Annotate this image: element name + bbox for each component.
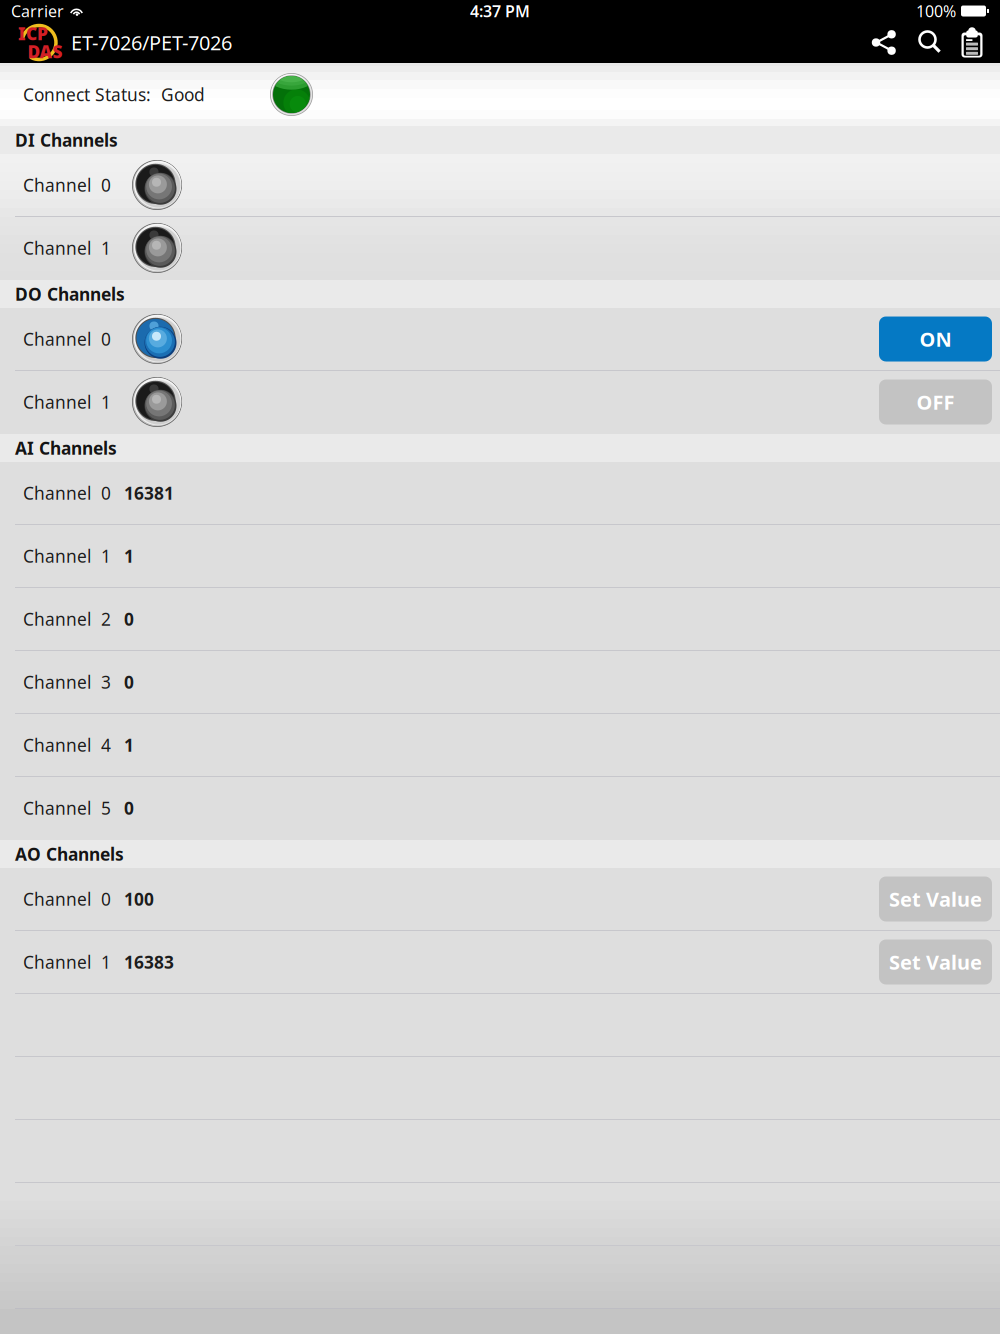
staticText: ET-7026/PET-7026 bbox=[71, 29, 232, 56]
staticText: ON bbox=[919, 326, 951, 352]
staticText: Channel 5 bbox=[23, 796, 111, 819]
staticText: Channel 0 bbox=[23, 327, 111, 350]
button[interactable]: Search bbox=[915, 27, 945, 57]
staticText: Channel 1 bbox=[23, 390, 111, 413]
staticText: Set Value bbox=[889, 886, 982, 912]
button[interactable]: Set Value bbox=[879, 939, 992, 984]
button[interactable]: Share bbox=[869, 27, 899, 57]
staticText: 16381 bbox=[124, 481, 174, 504]
staticText: DI Channels bbox=[15, 128, 118, 151]
staticText: Channel 3 bbox=[23, 670, 111, 693]
staticText: AI Channels bbox=[15, 436, 117, 459]
staticText: 0 bbox=[124, 607, 134, 630]
staticText: Channel 0 bbox=[23, 887, 111, 910]
staticText: Channel 1 bbox=[23, 950, 111, 973]
staticText: 100 bbox=[124, 887, 154, 910]
staticText: 0 bbox=[124, 796, 134, 819]
staticText: 1 bbox=[124, 733, 134, 756]
button[interactable]: ON bbox=[879, 316, 992, 361]
staticText: Channel 0 bbox=[23, 481, 111, 504]
staticText: 1 bbox=[124, 544, 134, 567]
staticText: Channel 0 bbox=[23, 173, 111, 196]
staticText: Channel 2 bbox=[23, 607, 111, 630]
staticText: AO Channels bbox=[15, 842, 124, 865]
staticText: DAS bbox=[27, 40, 62, 63]
button[interactable]: OFF bbox=[879, 379, 992, 424]
staticText: ICP bbox=[18, 22, 48, 45]
staticText: 0 bbox=[124, 670, 134, 693]
staticText: Set Value bbox=[889, 949, 982, 975]
staticText: 4:37 PM bbox=[470, 0, 530, 22]
staticText: 100% bbox=[916, 0, 956, 22]
staticText: DO Channels bbox=[15, 282, 125, 305]
staticText: Channel 4 bbox=[23, 733, 111, 756]
button[interactable]: Log bbox=[957, 27, 987, 57]
staticText: Channel 1 bbox=[23, 544, 111, 567]
staticText: Channel 1 bbox=[23, 236, 111, 259]
button[interactable]: Set Value bbox=[879, 876, 992, 921]
staticText: 16383 bbox=[124, 950, 174, 973]
staticText: Connect Status: Good bbox=[23, 83, 205, 106]
staticText: Carrier bbox=[11, 0, 64, 22]
staticText: OFF bbox=[916, 389, 954, 415]
